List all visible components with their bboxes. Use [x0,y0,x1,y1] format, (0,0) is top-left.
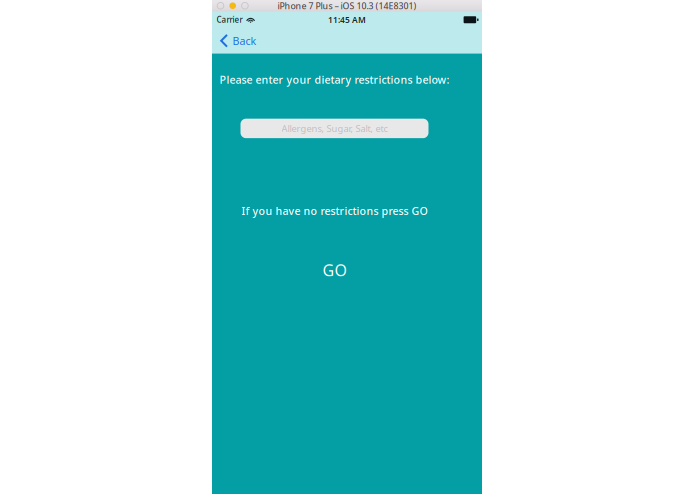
button[interactable]: GO [318,255,350,284]
staticText: Back [232,34,256,48]
staticText: Allergens, Sugar, Salt, etc [281,122,387,135]
staticText: 11:45 AM [328,14,366,25]
staticText: Please enter your dietary restrictions b… [219,72,449,87]
staticText: iPhone 7 Plus – iOS 10.3 (14E8301) [277,0,416,12]
staticText: GO [322,259,346,280]
staticText: Carrier [216,14,242,25]
button[interactable]: Back [212,28,263,53]
staticText: If you have no restrictions press GO [241,204,427,218]
